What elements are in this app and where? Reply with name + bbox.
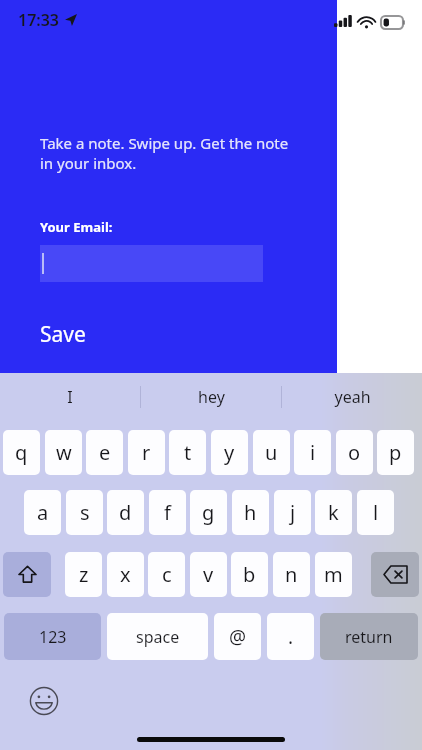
button[interactable]: Shift bbox=[3, 552, 51, 597]
button[interactable]: s bbox=[66, 490, 103, 535]
button[interactable]: m bbox=[315, 552, 352, 597]
button[interactable]: c bbox=[148, 552, 185, 597]
button[interactable]: 123 bbox=[4, 613, 101, 660]
staticText: n bbox=[285, 561, 298, 588]
staticText: a bbox=[37, 499, 49, 526]
staticText: f bbox=[164, 499, 171, 526]
staticText: w bbox=[56, 439, 72, 466]
button[interactable]: b bbox=[231, 552, 268, 597]
button[interactable]: y bbox=[211, 430, 248, 475]
button[interactable]: yeah bbox=[282, 373, 422, 421]
button[interactable]: h bbox=[232, 490, 269, 535]
staticText: u bbox=[265, 439, 278, 466]
button[interactable]: I bbox=[0, 373, 140, 421]
button[interactable]: t bbox=[169, 430, 206, 475]
button[interactable]: f bbox=[149, 490, 186, 535]
button[interactable]: e bbox=[86, 430, 123, 475]
staticText: v bbox=[203, 561, 214, 588]
staticText: @ bbox=[229, 624, 247, 650]
staticText: l bbox=[373, 499, 379, 526]
button[interactable]: a bbox=[24, 490, 61, 535]
staticText: Take a note. Swipe up. Get the note in y… bbox=[40, 133, 298, 173]
staticText: m bbox=[324, 561, 343, 588]
staticText: t bbox=[184, 439, 192, 466]
staticText: . bbox=[288, 624, 294, 650]
button[interactable]: p bbox=[377, 430, 414, 475]
button[interactable]: u bbox=[253, 430, 290, 475]
button[interactable]: l bbox=[357, 490, 394, 535]
staticText: k bbox=[328, 499, 339, 526]
button[interactable]: g bbox=[190, 490, 227, 535]
staticText: h bbox=[244, 499, 257, 526]
staticText: r bbox=[142, 439, 151, 466]
staticText: space bbox=[136, 626, 180, 648]
button[interactable]: hey bbox=[141, 373, 281, 421]
staticText: g bbox=[202, 499, 215, 526]
button[interactable]: . bbox=[267, 613, 314, 660]
staticText: p bbox=[389, 439, 402, 466]
button[interactable]: r bbox=[128, 430, 165, 475]
button[interactable]: i bbox=[294, 430, 331, 475]
staticText: e bbox=[99, 439, 111, 466]
button[interactable]: return bbox=[320, 613, 418, 660]
staticText: i bbox=[310, 439, 316, 466]
staticText: y bbox=[224, 439, 235, 466]
staticText: s bbox=[80, 499, 90, 526]
button[interactable]: w bbox=[45, 430, 82, 475]
staticText: return bbox=[345, 626, 393, 648]
button[interactable] bbox=[40, 245, 263, 282]
staticText: q bbox=[15, 439, 28, 466]
button[interactable]: x bbox=[107, 552, 144, 597]
staticText: Save bbox=[40, 320, 86, 349]
staticText: x bbox=[120, 561, 131, 588]
button[interactable]: space bbox=[107, 613, 208, 660]
staticText: b bbox=[243, 561, 256, 588]
button[interactable]: n bbox=[273, 552, 310, 597]
button[interactable]: z bbox=[65, 552, 102, 597]
staticText: c bbox=[162, 561, 172, 588]
button[interactable]: j bbox=[274, 490, 311, 535]
button[interactable]: o bbox=[336, 430, 373, 475]
staticText: d bbox=[119, 499, 132, 526]
staticText: z bbox=[79, 561, 89, 588]
staticText: Your Email: bbox=[40, 218, 113, 236]
button[interactable]: Backspace bbox=[371, 552, 419, 597]
staticText: o bbox=[348, 439, 361, 466]
button[interactable]: q bbox=[3, 430, 40, 475]
staticText: yeah bbox=[334, 386, 371, 408]
button[interactable]: @ bbox=[214, 613, 261, 660]
button[interactable]: Save bbox=[40, 318, 86, 351]
staticText: j bbox=[290, 499, 296, 526]
staticText: I bbox=[67, 386, 73, 408]
button[interactable]: d bbox=[107, 490, 144, 535]
staticText: hey bbox=[198, 386, 225, 408]
button[interactable]: Emoji bbox=[26, 683, 62, 719]
button[interactable]: k bbox=[315, 490, 352, 535]
staticText: 123 bbox=[39, 626, 67, 648]
button[interactable]: v bbox=[190, 552, 227, 597]
staticText: 17:33 bbox=[18, 9, 60, 31]
